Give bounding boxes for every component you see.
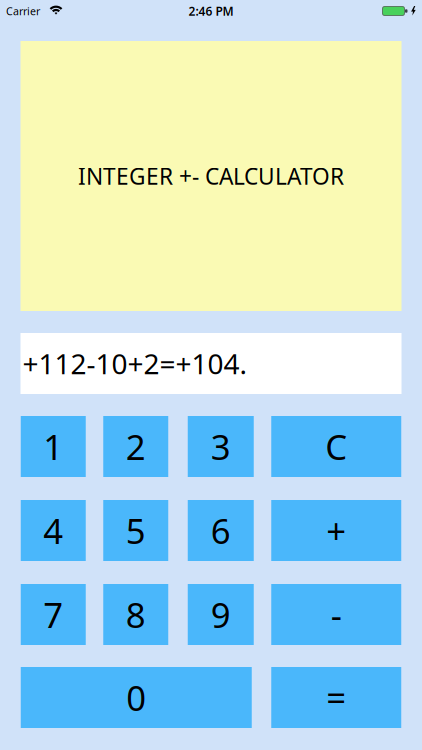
button[interactable]: - xyxy=(271,584,401,645)
staticText: + xyxy=(326,507,346,553)
button[interactable]: 9 xyxy=(188,584,254,645)
button[interactable]: 1 xyxy=(21,416,86,477)
button[interactable]: 5 xyxy=(103,500,168,561)
staticText: 7 xyxy=(43,591,63,637)
staticText: Carrier xyxy=(6,4,40,18)
button[interactable]: 3 xyxy=(188,416,254,477)
staticText: C xyxy=(325,423,347,469)
staticText: - xyxy=(331,591,342,637)
button[interactable]: 7 xyxy=(21,584,86,645)
staticText: +112-10+2=+104. xyxy=(22,345,247,382)
button[interactable]: = xyxy=(271,667,401,728)
staticText: 2:46 PM xyxy=(188,3,233,19)
staticText: 9 xyxy=(211,591,231,637)
staticText: 5 xyxy=(126,507,146,553)
staticText: 8 xyxy=(126,591,146,637)
staticText: 2 xyxy=(126,423,146,469)
button[interactable]: 4 xyxy=(21,500,86,561)
staticText: 6 xyxy=(211,507,231,553)
button[interactable]: + xyxy=(271,500,401,561)
button[interactable]: 6 xyxy=(188,500,254,561)
staticText: 4 xyxy=(43,507,63,553)
button[interactable]: 0 xyxy=(21,667,252,728)
staticText: = xyxy=(326,674,346,720)
button[interactable]: 2 xyxy=(103,416,168,477)
button[interactable]: C xyxy=(271,416,401,477)
staticText: 0 xyxy=(126,674,146,720)
staticText: 1 xyxy=(43,423,63,469)
button[interactable]: 8 xyxy=(103,584,168,645)
staticText: 3 xyxy=(211,423,231,469)
staticText: INTEGER +- CALCULATOR xyxy=(78,161,344,191)
